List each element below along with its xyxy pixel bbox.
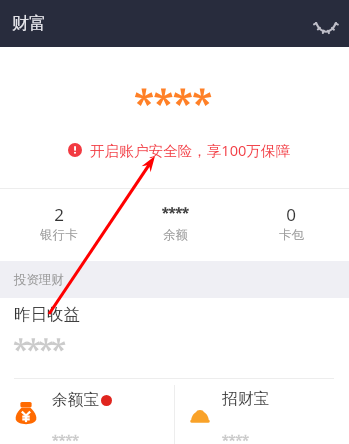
staticText: 招财宝 [222,389,270,409]
button[interactable]: Hide amount [312,16,340,42]
button[interactable]: 招财宝 [175,379,349,444]
button[interactable]: 余额宝 [0,379,174,444]
staticText: 0 [286,203,296,226]
staticText: 余额 [163,227,188,243]
staticText: 财富 [12,13,46,34]
staticText: 开启账户安全险，享100万保障 [90,140,291,159]
button[interactable]: 开启账户安全险，享100万保障 [5,140,349,159]
button[interactable]: 0 [233,189,349,260]
staticText: 余额宝 [52,390,100,410]
staticText: 2 [54,203,64,226]
staticText: 投资理财 [14,272,64,288]
staticText: 昨日收益 [14,304,80,325]
staticText: 卡包 [279,227,304,243]
staticText: 银行卡 [40,227,78,243]
button[interactable]: 余额 [117,189,233,260]
button[interactable]: 昨日收益 [0,297,349,379]
button[interactable]: 2 [0,189,117,260]
